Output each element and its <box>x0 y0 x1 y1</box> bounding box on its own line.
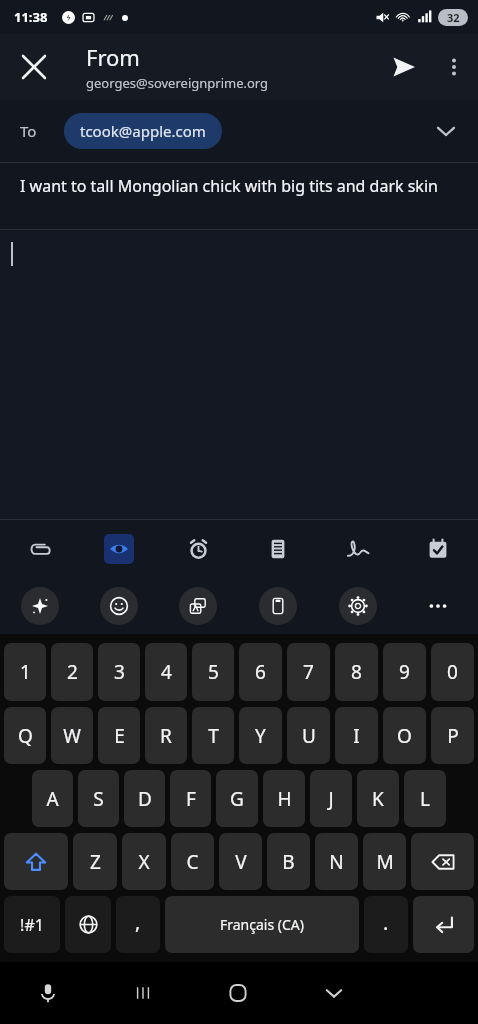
button[interactable]: D <box>124 770 165 827</box>
staticText: Z <box>90 849 101 875</box>
staticText: A <box>46 786 59 812</box>
button[interactable]: Close <box>8 41 60 93</box>
button[interactable]: Signature <box>318 520 398 578</box>
staticText: tcook@apple.com <box>80 121 206 141</box>
button[interactable]: Shift <box>4 833 68 890</box>
button[interactable]: U <box>287 707 330 764</box>
button[interactable]: X <box>122 833 166 890</box>
staticText: 6 <box>255 659 266 685</box>
button[interactable]: Enter <box>413 896 474 953</box>
button[interactable]: Voice input <box>0 962 95 1024</box>
button[interactable]: T <box>192 707 234 764</box>
button[interactable]: More options <box>430 43 478 91</box>
button[interactable]: , <box>116 896 160 953</box>
button[interactable]: Z <box>73 833 117 890</box>
staticText: 7 <box>303 659 314 685</box>
button[interactable]: N <box>315 833 358 890</box>
button[interactable]: Backspace <box>411 833 474 890</box>
staticText: E <box>114 723 125 749</box>
staticText: 2 <box>67 659 78 685</box>
button[interactable]: Expand recipients <box>424 109 468 153</box>
staticText: 1 <box>20 659 31 685</box>
staticText: 0 <box>447 659 458 685</box>
button[interactable]: Recents <box>95 962 190 1024</box>
button[interactable]: H <box>263 770 305 827</box>
staticText: M <box>376 849 394 875</box>
button[interactable]: 1 <box>4 643 46 701</box>
staticText: C <box>186 849 199 875</box>
button[interactable]: Clipboard <box>238 578 318 634</box>
button[interactable]: E <box>98 707 140 764</box>
staticText: 5 <box>208 659 219 685</box>
staticText: P <box>447 723 459 749</box>
button[interactable]: 7 <box>287 643 330 701</box>
button[interactable]: K <box>357 770 399 827</box>
button[interactable]: G <box>216 770 258 827</box>
button[interactable]: 5 <box>192 643 234 701</box>
button[interactable]: 6 <box>239 643 282 701</box>
button[interactable]: I want to tall Mongolian chick with big … <box>0 163 478 229</box>
staticText: 4 <box>161 659 172 685</box>
staticText: J <box>328 786 334 812</box>
button[interactable]: I <box>335 707 378 764</box>
button[interactable]: Hide keyboard <box>286 962 382 1024</box>
button[interactable]: W <box>51 707 93 764</box>
button[interactable]: 9 <box>383 643 426 701</box>
button[interactable]: Schedule send <box>158 520 238 578</box>
button[interactable]: P <box>431 707 474 764</box>
button[interactable]: C <box>171 833 214 890</box>
staticText: F <box>186 786 196 812</box>
staticText: , <box>135 908 141 935</box>
button[interactable]: O <box>383 707 426 764</box>
button[interactable]: More <box>398 578 478 634</box>
button[interactable]: S <box>78 770 119 827</box>
button[interactable]: Emoji <box>79 578 158 634</box>
staticText: Q <box>18 723 33 749</box>
button[interactable]: A <box>32 770 73 827</box>
button[interactable]: Insert note <box>238 520 318 578</box>
button[interactable]: 3 <box>98 643 140 701</box>
staticText: O <box>397 723 412 749</box>
staticText: Y <box>255 723 266 749</box>
button[interactable]: tcook@apple.com <box>80 113 206 149</box>
staticText: U <box>302 723 316 749</box>
button[interactable]: 4 <box>145 643 187 701</box>
button[interactable]: Attach <box>0 520 79 578</box>
button[interactable]: F <box>170 770 211 827</box>
staticText: H <box>277 786 292 812</box>
button[interactable]: Français (CA) <box>165 896 359 953</box>
staticText: 9 <box>399 659 410 685</box>
staticText: V <box>235 849 247 875</box>
button[interactable]: Home <box>190 962 286 1024</box>
button[interactable]: Send <box>378 41 430 93</box>
button[interactable] <box>0 230 478 519</box>
button[interactable]: Q <box>4 707 46 764</box>
staticText: T <box>208 723 219 749</box>
button[interactable]: L <box>404 770 446 827</box>
button[interactable]: R <box>145 707 187 764</box>
button[interactable]: M <box>363 833 406 890</box>
staticText: From <box>86 42 140 72</box>
button[interactable]: To <box>0 100 478 162</box>
staticText: To <box>20 121 37 141</box>
button[interactable]: Keyboard settings <box>318 578 398 634</box>
button[interactable]: Translate <box>158 578 238 634</box>
button[interactable]: 2 <box>51 643 93 701</box>
button[interactable]: . <box>364 896 408 953</box>
staticText: X <box>138 849 150 875</box>
staticText: R <box>160 723 172 749</box>
button[interactable]: V <box>219 833 262 890</box>
button[interactable]: 8 <box>335 643 378 701</box>
button[interactable]: B <box>267 833 310 890</box>
button[interactable]: 0 <box>431 643 474 701</box>
button[interactable]: Confidential mode <box>79 520 158 578</box>
button[interactable]: !#1 <box>4 896 60 953</box>
button[interactable]: Change language <box>65 896 111 953</box>
button[interactable]: Y <box>239 707 282 764</box>
button[interactable]: J <box>310 770 352 827</box>
button[interactable]: Calendar invite <box>398 520 478 578</box>
staticText: 11:38 <box>14 8 48 26</box>
staticText: I want to tall Mongolian chick with big … <box>20 175 438 197</box>
staticText: !#1 <box>20 914 44 936</box>
button[interactable]: Smart compose <box>0 578 79 634</box>
